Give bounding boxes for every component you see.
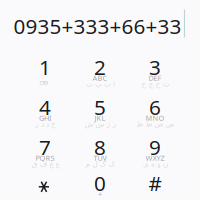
button[interactable]: 6 <box>128 94 182 134</box>
staticText: 0935+333+66+33 <box>13 12 181 40</box>
staticText: + <box>98 189 102 199</box>
staticText: 8 <box>94 133 106 161</box>
staticText: 1 <box>39 53 51 81</box>
staticText: DEF <box>148 73 161 83</box>
staticText: TUV <box>93 153 106 163</box>
staticText: # <box>148 169 161 197</box>
button[interactable]: 1 <box>18 54 72 94</box>
staticText: ک گ ل م <box>85 160 115 168</box>
staticText: ع غ ف ق <box>31 160 59 168</box>
button[interactable]: 8 <box>73 134 127 174</box>
staticText: 4 <box>39 93 51 121</box>
staticText: 2 <box>94 53 106 81</box>
button[interactable]: 4 <box>18 94 72 134</box>
staticText: ن و ه ی <box>142 160 167 168</box>
staticText: PQRS <box>35 153 54 163</box>
staticText: 9 <box>149 133 161 161</box>
staticText: ا ب پ ت <box>85 80 114 88</box>
button[interactable]: Star <box>18 170 72 200</box>
staticText: ص ض ط ظ <box>136 120 174 128</box>
staticText: MNO <box>145 113 164 123</box>
staticText: 6 <box>149 93 161 121</box>
button[interactable]: 7 <box>18 134 72 174</box>
staticText: ث ج چ ح <box>141 80 169 88</box>
button[interactable]: # <box>128 170 182 200</box>
button[interactable]: 2 <box>73 54 127 94</box>
staticText: 0 <box>94 169 106 197</box>
staticText: 5 <box>94 93 106 121</box>
button[interactable]: 3 <box>128 54 182 94</box>
staticText: 7 <box>39 133 51 161</box>
staticText: ABC <box>92 73 107 83</box>
button[interactable]: 0 <box>73 170 127 200</box>
button[interactable]: 9 <box>128 134 182 174</box>
staticText: خ د ذ ر <box>34 120 55 128</box>
staticText: JKL <box>94 113 105 123</box>
staticText: WXYZ <box>145 153 164 163</box>
staticText: GHI <box>39 113 51 123</box>
button[interactable]: 5 <box>73 94 127 134</box>
button[interactable]: Phone number <box>0 3 200 49</box>
staticText: ز ژ س ش <box>84 120 116 128</box>
staticText: 3 <box>149 53 161 81</box>
